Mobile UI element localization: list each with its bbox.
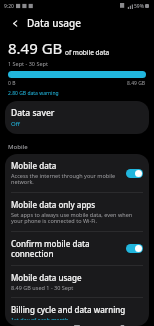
button[interactable]: Confirm mobile data connection <box>5 232 149 265</box>
staticText: 8.49 GB used 1 - 30 Sept <box>11 284 74 291</box>
staticText: Set apps to always use mobile data, even… <box>11 211 143 225</box>
staticText: Mobile data <box>11 160 57 171</box>
staticText: 1st day of each month <box>11 316 69 320</box>
staticText: Mobile <box>8 143 28 151</box>
staticText: of mobile data <box>65 48 110 57</box>
button[interactable]: Toggle Mobile data <box>126 169 143 178</box>
staticText: Mobile data only apps <box>11 199 96 210</box>
staticText: 2.80 GB data warning <box>8 90 59 97</box>
button[interactable]: Data saver <box>5 101 149 134</box>
staticText: Access the internet through your mobile … <box>11 172 122 186</box>
button[interactable]: Mobile data only apps <box>5 193 149 231</box>
staticText: Mobile data usage <box>11 272 82 283</box>
staticText: Data usage <box>27 16 81 30</box>
staticText: Data saver <box>11 107 55 119</box>
button[interactable]: Mobile data <box>5 154 149 192</box>
staticText: 0 B <box>8 80 16 87</box>
button[interactable]: Toggle Confirm mobile data connection <box>126 244 143 253</box>
button[interactable]: Billing cycle and data warning <box>5 298 149 326</box>
button[interactable]: Mobile data usage <box>5 266 149 297</box>
staticText: 8.49 GB <box>8 38 63 58</box>
staticText: Confirm mobile data connection <box>11 238 122 259</box>
staticText: 1 Sept - 30 Sept <box>8 60 48 67</box>
staticText: 59% <box>134 3 144 10</box>
staticText: Off <box>11 120 20 128</box>
staticText: 9:20 <box>4 3 14 10</box>
staticText: 8.49 GB <box>127 80 146 87</box>
staticText: Billing cycle and data warning <box>11 304 126 315</box>
button[interactable]: Back <box>6 14 24 32</box>
